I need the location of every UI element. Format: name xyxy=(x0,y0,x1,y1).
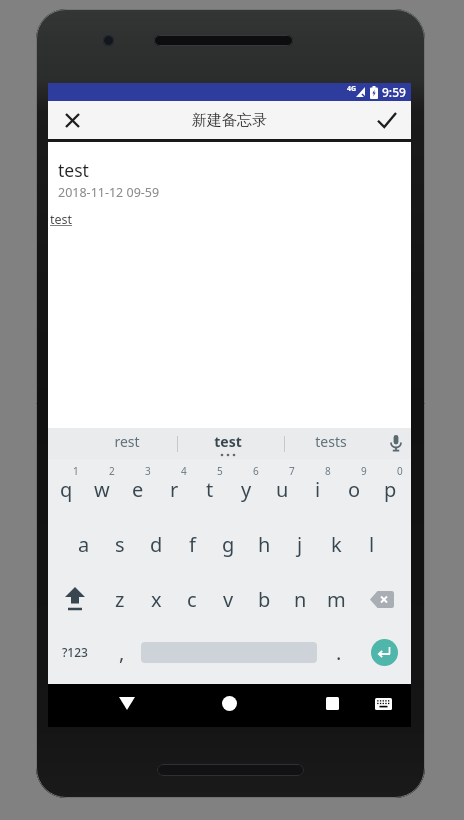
button[interactable]: . xyxy=(321,625,357,679)
button[interactable]: v xyxy=(210,572,246,626)
staticText: , xyxy=(119,639,125,666)
staticText: e xyxy=(132,476,144,503)
staticText: 2018-11-12 09-59 xyxy=(58,184,160,201)
staticText: 5 xyxy=(217,464,223,478)
button[interactable] xyxy=(48,101,96,139)
staticText: 9 xyxy=(361,464,367,478)
staticText: j xyxy=(297,531,303,558)
staticText: x xyxy=(151,586,162,613)
button[interactable] xyxy=(389,435,403,453)
staticText: m xyxy=(327,586,346,613)
staticText: i xyxy=(315,476,321,503)
button[interactable]: x xyxy=(138,572,174,626)
button[interactable] xyxy=(103,684,151,727)
button[interactable]: s xyxy=(102,517,138,571)
button[interactable] xyxy=(48,572,102,626)
staticText: p xyxy=(384,476,397,503)
staticText: o xyxy=(348,476,361,503)
button[interactable]: b xyxy=(246,572,282,626)
button[interactable]: j xyxy=(282,517,318,571)
staticText: 2 xyxy=(109,464,115,478)
staticText: 新建备忘录 xyxy=(192,111,267,130)
button[interactable]: m xyxy=(318,572,354,626)
staticText: d xyxy=(150,531,163,558)
staticText: r xyxy=(170,476,179,503)
staticText: k xyxy=(331,531,342,558)
button[interactable]: i xyxy=(300,462,336,516)
button[interactable] xyxy=(371,639,398,666)
staticText: y xyxy=(241,476,252,503)
button[interactable] xyxy=(308,684,356,727)
button[interactable]: h xyxy=(246,517,282,571)
button[interactable] xyxy=(360,684,406,727)
button[interactable]: r xyxy=(156,462,192,516)
staticText: w xyxy=(94,476,110,503)
staticText: . xyxy=(336,639,342,666)
staticText: 6 xyxy=(253,464,259,478)
button[interactable]: test xyxy=(198,432,258,451)
staticText: test xyxy=(50,211,73,228)
staticText: n xyxy=(294,586,307,613)
staticText: q xyxy=(60,476,73,503)
button[interactable] xyxy=(205,684,253,727)
button[interactable]: l xyxy=(354,517,390,571)
staticText: l xyxy=(369,531,375,558)
staticText: s xyxy=(115,531,125,558)
staticText: 3 xyxy=(145,464,151,478)
button[interactable]: ?123 xyxy=(48,625,102,679)
staticText: ?123 xyxy=(62,644,88,660)
staticText: z xyxy=(115,586,125,613)
staticText: t xyxy=(206,476,214,503)
button[interactable] xyxy=(363,101,411,139)
staticText: a xyxy=(78,531,90,558)
staticText: f xyxy=(189,531,196,558)
button[interactable]: g xyxy=(210,517,246,571)
button[interactable]: tests xyxy=(301,432,361,451)
button[interactable]: q xyxy=(48,462,84,516)
button[interactable]: n xyxy=(282,572,318,626)
button[interactable]: t xyxy=(192,462,228,516)
staticText: c xyxy=(187,586,197,613)
staticText: 4G xyxy=(347,84,357,94)
button[interactable]: o xyxy=(336,462,372,516)
staticText: g xyxy=(222,531,235,558)
staticText: v xyxy=(223,586,234,613)
button[interactable]: f xyxy=(174,517,210,571)
button[interactable]: , xyxy=(104,625,140,679)
button[interactable]: u xyxy=(264,462,300,516)
staticText: 0 xyxy=(397,464,403,478)
staticText: 1 xyxy=(73,464,79,478)
staticText: h xyxy=(258,531,271,558)
button[interactable]: p xyxy=(372,462,408,516)
button[interactable]: e xyxy=(120,462,156,516)
button[interactable]: w xyxy=(84,462,120,516)
button[interactable]: c xyxy=(174,572,210,626)
button[interactable]: d xyxy=(138,517,174,571)
staticText: test xyxy=(58,158,89,182)
staticText: 4 xyxy=(181,464,187,478)
button[interactable]: rest xyxy=(97,432,157,451)
button[interactable]: k xyxy=(318,517,354,571)
staticText: u xyxy=(276,476,289,503)
button[interactable]: y xyxy=(228,462,264,516)
button[interactable]: z xyxy=(102,572,138,626)
staticText: b xyxy=(258,586,271,613)
button[interactable] xyxy=(354,572,409,626)
staticText: 7 xyxy=(289,464,295,478)
staticText: 9:59 xyxy=(382,84,406,100)
staticText: 8 xyxy=(325,464,331,478)
button[interactable]: a xyxy=(66,517,102,571)
